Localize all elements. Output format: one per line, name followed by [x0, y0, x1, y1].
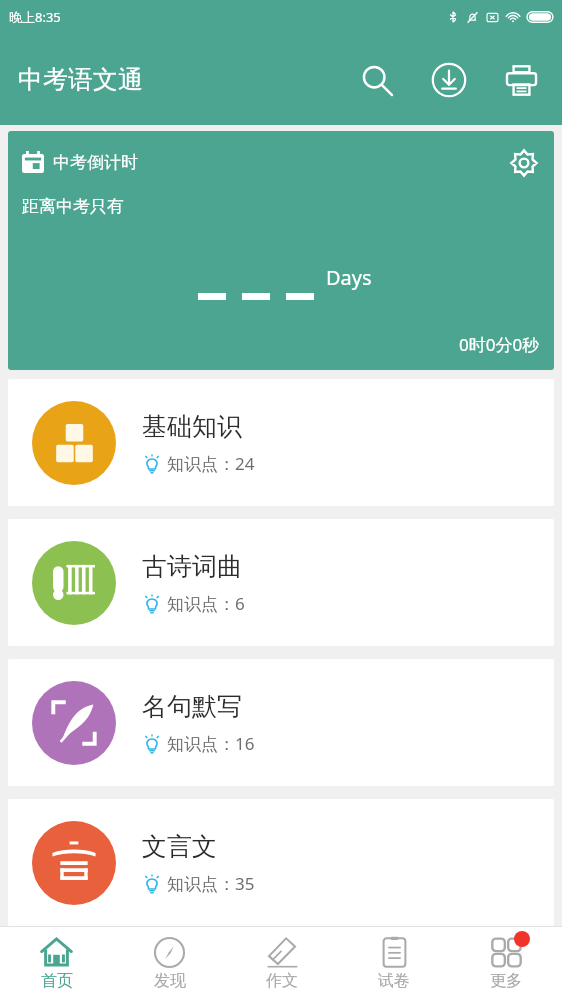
- staticText: 发现: [154, 971, 186, 991]
- staticText: 中考倒计时: [53, 152, 138, 173]
- button[interactable]: Search: [348, 51, 406, 109]
- staticText: Days: [326, 264, 372, 291]
- button[interactable]: Print: [492, 51, 550, 109]
- button[interactable]: 首页: [0, 927, 113, 1000]
- button[interactable]: 更多: [450, 927, 562, 1000]
- staticText: 试卷: [378, 971, 410, 991]
- staticText: 中考语文通: [18, 64, 143, 95]
- button[interactable]: Download: [420, 51, 478, 109]
- button[interactable]: 文言文: [8, 799, 554, 926]
- staticText: 作文: [266, 971, 298, 991]
- button[interactable]: 基础知识: [8, 379, 554, 506]
- staticText: 文言文: [142, 831, 217, 862]
- staticText: 基础知识: [142, 411, 242, 442]
- staticText: 名句默写: [142, 691, 242, 722]
- button[interactable]: 中考倒计时: [8, 131, 554, 370]
- staticText: 知识点：6: [167, 592, 245, 615]
- staticText: 知识点：16: [167, 732, 255, 755]
- staticText: 古诗词曲: [142, 551, 242, 582]
- button[interactable]: 试卷: [338, 927, 450, 1000]
- staticText: 0时0分0秒: [459, 333, 540, 356]
- staticText: 距离中考只有: [22, 196, 124, 217]
- button[interactable]: Settings: [502, 141, 546, 185]
- button[interactable]: 作文: [226, 927, 338, 1000]
- staticText: 知识点：24: [167, 452, 255, 475]
- button[interactable]: 古诗词曲: [8, 519, 554, 646]
- staticText: 知识点：35: [167, 872, 255, 895]
- button[interactable]: 发现: [113, 927, 226, 1000]
- staticText: 更多: [490, 971, 522, 991]
- staticText: 晚上8:35: [9, 8, 61, 26]
- staticText: 首页: [41, 971, 73, 991]
- button[interactable]: 名句默写: [8, 659, 554, 786]
